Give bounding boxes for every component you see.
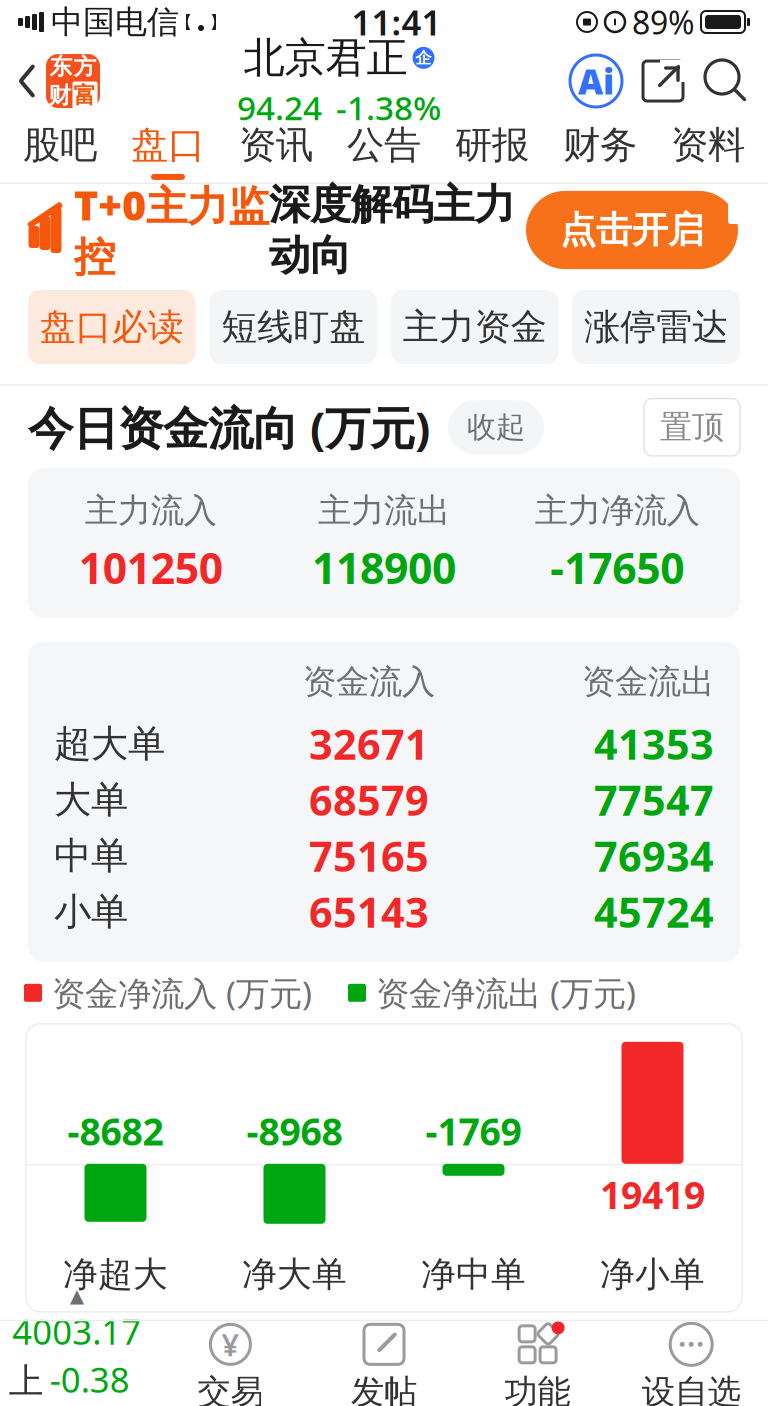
staticText: 主力流出 (318, 490, 450, 531)
staticText: 19419 (600, 1170, 705, 1219)
button[interactable]: 搜索 (702, 57, 750, 105)
staticText: 深度解码主力动向 (269, 179, 515, 281)
staticText: ¥ (221, 1324, 239, 1365)
staticText: Ai (578, 58, 614, 104)
staticText: 资金净流入 (万元) (52, 971, 312, 1015)
staticText: 净超大 (63, 1253, 168, 1296)
staticText: 盘口 (131, 122, 205, 168)
button[interactable]: 盘口 (114, 114, 222, 188)
button[interactable]: 收起 (448, 400, 544, 454)
staticText: -17650 (550, 539, 684, 596)
staticText: 短线盯盘 (221, 305, 365, 349)
staticText: 19419 (600, 1017, 705, 1067)
staticText: 净中单 (421, 1253, 526, 1296)
staticText: 65143 (309, 884, 429, 939)
staticText: 企 (415, 48, 431, 68)
staticText: 资金流出 (582, 661, 714, 702)
staticText: 118900 (312, 539, 456, 596)
staticText: 101250 (79, 539, 223, 596)
button[interactable]: 股吧 (6, 114, 114, 188)
button[interactable]: 研报 (438, 114, 546, 188)
button[interactable]: ¥ (154, 1321, 307, 1406)
staticText: 点击开启 (560, 208, 704, 252)
button[interactable]: 设自选 (614, 1321, 768, 1406)
button[interactable]: 关闭广告 (728, 184, 768, 224)
button[interactable]: 公告 (330, 114, 438, 188)
staticText: 上证 (9, 1360, 44, 1406)
button[interactable]: 置顶 (644, 399, 740, 456)
staticText: 大单 (54, 777, 128, 823)
staticText: -8968 (246, 1106, 342, 1156)
staticText: 股吧 (23, 122, 97, 168)
staticText: 41353 (594, 716, 714, 771)
staticText: 东 (49, 53, 72, 80)
staticText: 77547 (594, 772, 714, 827)
button[interactable]: 财务 (546, 114, 654, 188)
staticText: 净小单 (600, 1253, 705, 1296)
staticText: 32671 (309, 716, 429, 771)
staticText: 资金净流出 (万元) (376, 971, 636, 1015)
staticText: 涨停雷达 (584, 305, 728, 349)
button[interactable]: 功能 (461, 1321, 614, 1406)
staticText: 中国电信 (51, 2, 179, 42)
staticText: -1.38% (336, 85, 441, 130)
staticText: 设自选 (642, 1371, 741, 1406)
staticText: 公告 (347, 122, 421, 168)
staticText: 盘口必读 (40, 305, 184, 349)
staticText: -1769 (425, 1106, 521, 1156)
staticText: -8682 (67, 1106, 163, 1156)
staticText: 超大单 (54, 721, 165, 767)
staticText: 北京君正 (243, 32, 407, 83)
button[interactable]: AI 助手 (568, 53, 624, 109)
staticText: 主力净流入 (535, 490, 700, 531)
staticText: 主力资金 (403, 305, 547, 349)
staticText: 中单 (54, 833, 128, 879)
staticText: 94.24 (237, 85, 322, 130)
staticText: 资讯 (239, 122, 313, 168)
button[interactable]: 发帖 (307, 1321, 461, 1406)
button[interactable]: 点击开启 (526, 191, 738, 269)
staticText: 小单 (54, 889, 128, 935)
button[interactable]: 分享 (640, 58, 686, 104)
staticText: T+0主力监控 (74, 177, 269, 283)
staticText: 76934 (594, 828, 714, 883)
staticText: 68579 (309, 772, 429, 827)
staticText: 净大单 (242, 1253, 347, 1296)
staticText: 发帖 (351, 1371, 417, 1406)
staticText: 富 (73, 81, 96, 109)
button[interactable]: 短线盯盘 (209, 290, 377, 364)
staticText: 交易 (197, 1371, 263, 1406)
staticText: 45724 (594, 884, 714, 939)
staticText: 研报 (455, 122, 529, 168)
staticText: 功能 (505, 1371, 571, 1406)
staticText: 主力流入 (85, 490, 217, 531)
staticText: 89% (632, 1, 695, 43)
staticText: 资料 (671, 122, 745, 168)
staticText: 75165 (309, 828, 429, 883)
staticText: 财务 (563, 122, 637, 168)
button[interactable]: ▲ (0, 1285, 154, 1406)
button[interactable]: 盘口必读 (28, 290, 195, 364)
button[interactable]: 资料 (654, 114, 762, 188)
staticText: ▲ (70, 1285, 84, 1306)
staticText: 今日资金流向 (万元) (28, 397, 430, 457)
button[interactable]: 主力资金 (391, 290, 558, 364)
staticText: 收起 (467, 409, 525, 445)
staticText: 方 (73, 53, 96, 80)
staticText: 置顶 (660, 408, 724, 447)
staticText: 资金流入 (303, 661, 435, 702)
button[interactable]: 返回 (0, 54, 100, 108)
staticText: -0.38% (50, 1356, 130, 1406)
staticText: 4003.17 (12, 1308, 141, 1354)
button[interactable]: 涨停雷达 (572, 290, 740, 364)
button[interactable]: 资讯 (222, 114, 330, 188)
staticText: 11:41 (351, 0, 441, 45)
staticText: 财 (48, 81, 71, 109)
